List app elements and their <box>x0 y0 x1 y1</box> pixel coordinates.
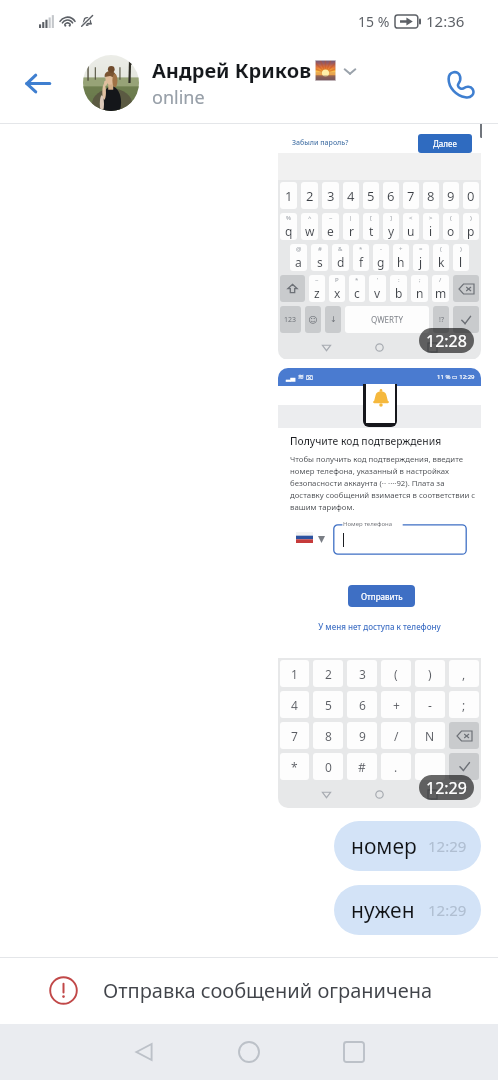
staticText: 2 <box>325 666 332 682</box>
staticText: ^ <box>308 214 312 222</box>
staticText: номер <box>351 832 417 861</box>
staticText: ⌧ <box>306 374 313 381</box>
staticText: q <box>285 223 293 239</box>
staticText: ~ <box>315 276 319 284</box>
staticText: + <box>399 245 403 253</box>
staticText: * <box>291 759 298 775</box>
staticText: ~ <box>329 214 333 222</box>
staticText: 1 <box>285 187 293 205</box>
staticText: i <box>429 223 433 239</box>
staticText: 8 <box>325 728 332 744</box>
staticText: 12:29 <box>428 900 467 920</box>
staticText: % <box>286 214 291 222</box>
staticText: 0 <box>325 759 332 775</box>
staticText: m <box>435 285 447 301</box>
staticText: b <box>395 285 403 301</box>
staticText: ( <box>450 214 452 222</box>
staticText: [ <box>370 214 372 222</box>
staticText: Забыли пароль? <box>292 138 349 148</box>
staticText: - <box>380 245 382 253</box>
staticText: | <box>349 214 353 222</box>
staticText: 5 <box>325 697 332 713</box>
staticText: 7 <box>407 187 415 205</box>
button[interactable]: Recent apps <box>331 1029 377 1075</box>
staticText: k <box>438 254 445 270</box>
staticText: , <box>462 666 466 682</box>
staticText: P <box>335 276 339 284</box>
staticText: Отправить <box>361 591 403 602</box>
button[interactable]: Home <box>226 1029 272 1075</box>
staticText: ▂▄ <box>286 374 296 381</box>
button[interactable]: Back <box>12 57 64 109</box>
staticText: p <box>467 223 475 239</box>
staticText: ☺ <box>308 315 318 325</box>
staticText: - <box>428 697 432 713</box>
staticText: Далее <box>433 138 457 149</box>
staticText: 6 <box>359 697 366 713</box>
staticText: ) <box>428 666 432 682</box>
staticText: f <box>359 254 364 270</box>
staticText: 15 % <box>358 12 390 31</box>
staticText: u <box>407 223 415 239</box>
staticText: . <box>394 759 398 775</box>
staticText: 2 <box>306 187 314 205</box>
staticText: У меня нет доступа к телефону <box>278 621 481 632</box>
staticText: z <box>314 285 320 301</box>
staticText: t <box>369 223 374 239</box>
staticText: g <box>377 254 385 270</box>
staticText: ; <box>462 697 466 713</box>
staticText: N <box>425 728 435 744</box>
staticText: r <box>349 223 354 239</box>
staticText: & <box>338 245 343 253</box>
staticText: 9 <box>447 187 455 205</box>
staticText: ↓ <box>330 315 337 324</box>
staticText: s <box>317 254 323 270</box>
staticText: d <box>337 254 345 270</box>
staticText: # <box>318 245 322 253</box>
button[interactable]: Забыли пароль? <box>278 131 481 360</box>
staticText: c <box>354 285 360 301</box>
staticText: 12:29 <box>428 836 467 856</box>
staticText: 12:29 <box>426 777 467 799</box>
staticText: ] <box>390 214 392 222</box>
staticText: 11 % ▭ 12:29 <box>437 373 475 381</box>
staticText: j <box>419 254 423 270</box>
staticText: Отправка сообщений ограничена <box>103 977 433 1004</box>
staticText: ≋ <box>298 373 304 381</box>
staticText: = <box>419 245 423 253</box>
staticText: + <box>393 697 400 713</box>
staticText: 4 <box>347 187 355 205</box>
staticText: 0 <box>467 187 475 205</box>
staticText: x <box>334 285 341 301</box>
button[interactable]: Андрей Криков <box>83 55 357 111</box>
staticText: y <box>388 223 395 239</box>
staticText: l <box>459 254 463 270</box>
staticText: ( <box>440 245 442 253</box>
staticText: 12:36 <box>426 11 465 31</box>
staticText: 3 <box>359 666 366 682</box>
staticText: 3 <box>327 187 335 205</box>
staticText: v <box>374 285 381 301</box>
staticText: ) <box>470 214 472 222</box>
staticText: 8 <box>427 187 435 205</box>
staticText: : <box>398 276 400 284</box>
button[interactable]: ▂▄ <box>278 368 481 808</box>
staticText: QWERTY <box>371 314 404 325</box>
staticText: < <box>409 214 413 222</box>
staticText: 12:28 <box>426 330 467 352</box>
staticText: 6 <box>387 187 395 205</box>
staticText: ' <box>377 276 379 284</box>
staticText: ) <box>460 245 462 253</box>
staticText: o <box>447 223 455 239</box>
staticText: ( <box>394 666 398 682</box>
staticText: / <box>439 276 442 284</box>
button[interactable]: номер <box>334 821 481 871</box>
staticText: нужен <box>351 896 415 925</box>
button[interactable]: Call <box>438 60 484 106</box>
staticText: * <box>359 245 363 253</box>
button[interactable]: нужен <box>334 885 481 935</box>
staticText: online <box>152 85 205 110</box>
staticText: 7 <box>291 728 298 744</box>
button[interactable]: Back <box>121 1029 167 1075</box>
staticText: 9 <box>359 728 366 744</box>
